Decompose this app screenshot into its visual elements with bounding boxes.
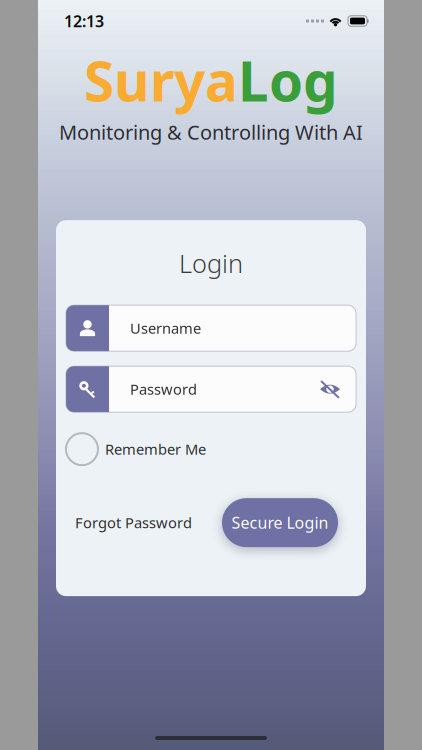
staticText: Log <box>238 44 338 117</box>
staticText: Username <box>130 318 201 338</box>
button[interactable]: Remember Me <box>66 433 356 465</box>
staticText: 12:13 <box>64 10 104 32</box>
staticText: Secure Login <box>231 512 328 533</box>
staticText: Login <box>179 246 243 280</box>
staticText: Password <box>130 379 197 399</box>
staticText: Surya <box>84 44 238 117</box>
staticText: Remember Me <box>105 439 206 459</box>
button[interactable]: Forgot Password <box>75 498 192 547</box>
staticText: Forgot Password <box>75 513 192 532</box>
staticText: Monitoring & Controlling With AI <box>59 119 363 145</box>
button[interactable]: Secure Login <box>222 498 338 547</box>
button[interactable]: Show password <box>320 380 340 398</box>
